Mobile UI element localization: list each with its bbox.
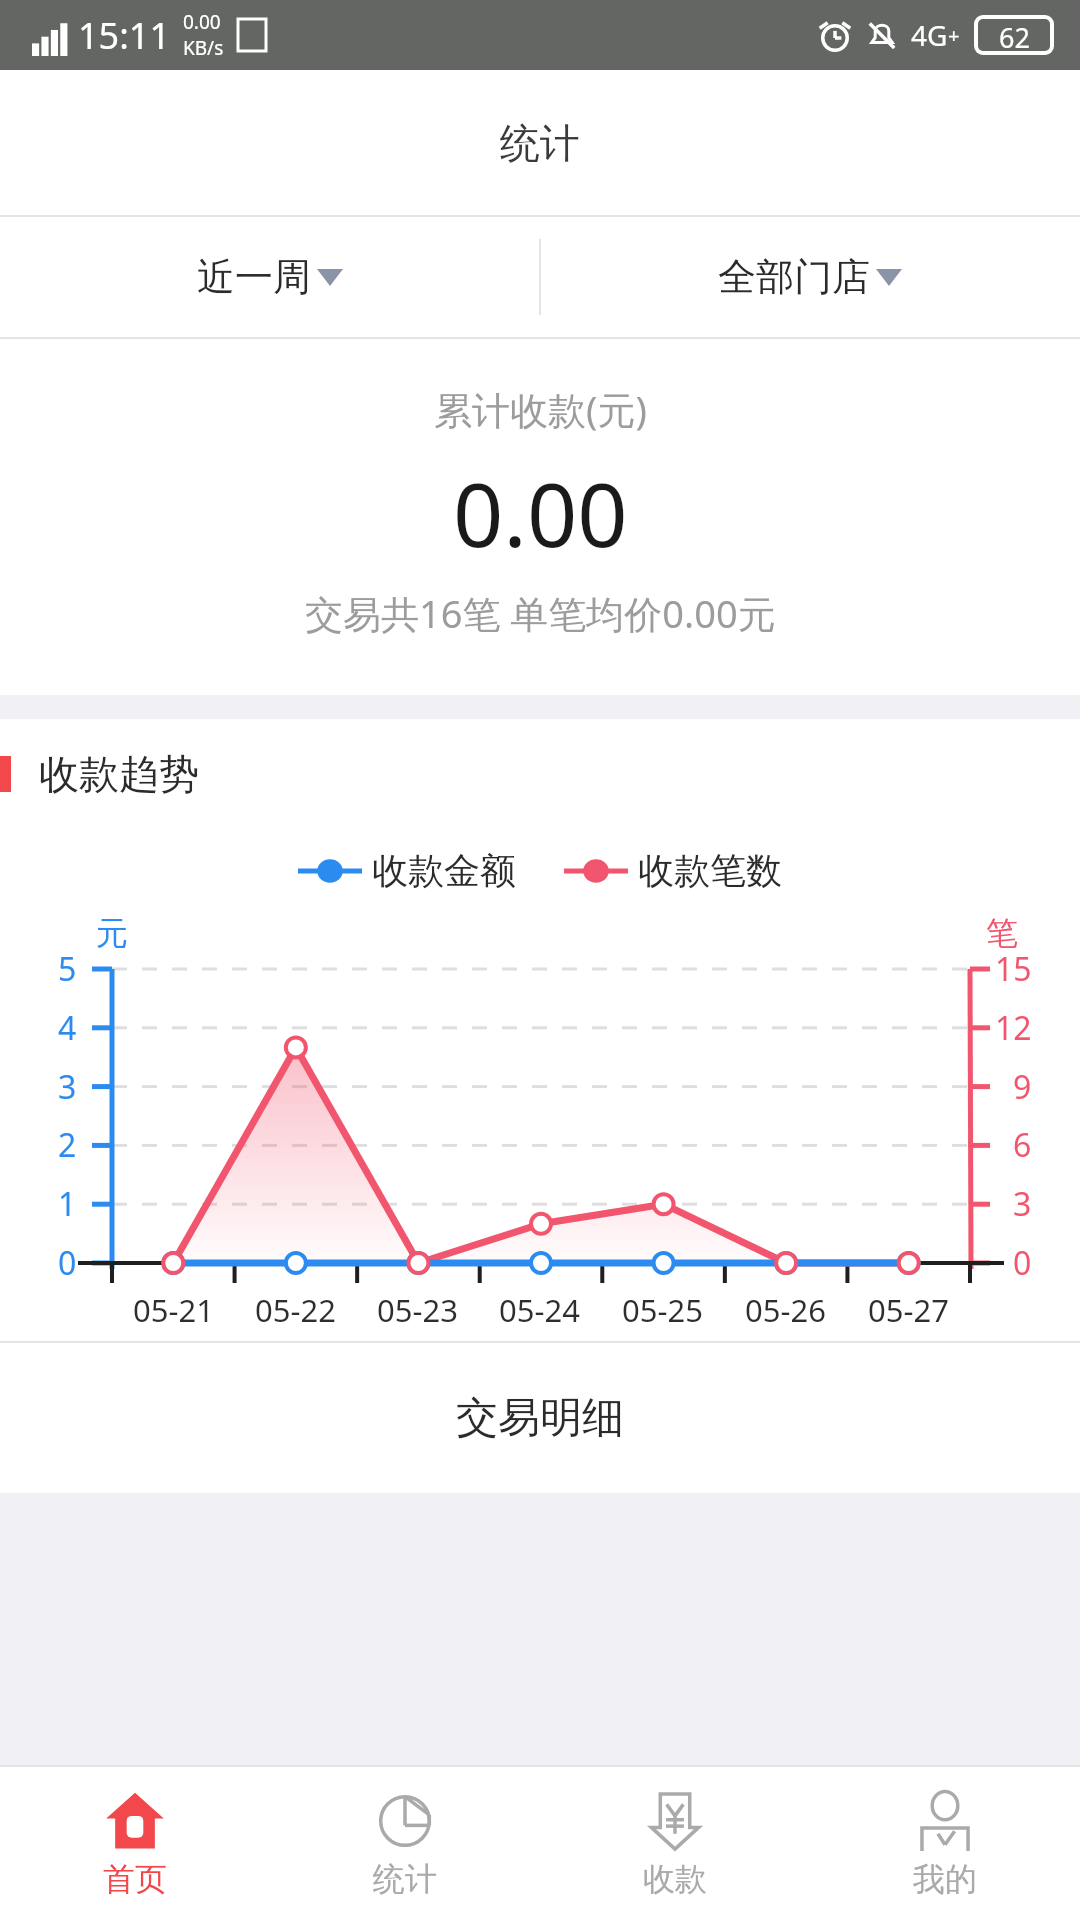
staticText: 首页 <box>103 1859 167 1899</box>
button[interactable]: 交易明细 <box>0 1343 1080 1493</box>
staticText: 5 <box>58 947 77 991</box>
staticText: 统计 <box>500 118 580 168</box>
button[interactable]: 首页 <box>0 1767 270 1920</box>
staticText: 12 <box>995 1006 1032 1050</box>
staticText: 近一周 <box>197 253 311 301</box>
staticText: 交易共16笔 单笔均价0.00元 <box>305 587 776 639</box>
staticText: 1 <box>58 1182 77 1226</box>
staticText: 收款金额 <box>372 848 516 893</box>
staticText: 收款趋势 <box>39 749 199 799</box>
staticText: 0 <box>58 1241 77 1285</box>
staticText: 4G <box>911 16 948 54</box>
staticText: 05-26 <box>745 1289 826 1331</box>
button[interactable]: 统计 <box>270 1767 540 1920</box>
staticText: 15 <box>995 947 1032 991</box>
staticText: 2 <box>58 1123 77 1167</box>
button[interactable]: 收款 <box>540 1767 810 1920</box>
staticText: 0 <box>1013 1241 1032 1285</box>
staticText: 笔 <box>986 913 1018 953</box>
staticText: 15:11 <box>78 11 171 60</box>
staticText: 05-24 <box>499 1289 580 1331</box>
staticText: 3 <box>58 1065 77 1109</box>
staticText: 05-22 <box>255 1289 336 1331</box>
staticText: 6 <box>1013 1123 1032 1167</box>
staticText: 62 <box>999 19 1030 51</box>
staticText: 统计 <box>373 1859 437 1899</box>
staticText: 我的 <box>913 1859 977 1899</box>
staticText: 9 <box>1013 1065 1032 1109</box>
staticText: 4 <box>58 1006 77 1050</box>
staticText: 05-23 <box>377 1289 458 1331</box>
button[interactable]: 我的 <box>810 1767 1080 1920</box>
staticText: 全部门店 <box>718 253 870 301</box>
button[interactable]: 近一周 <box>0 217 540 337</box>
staticText: KB/s <box>183 35 224 61</box>
button[interactable]: 全部门店 <box>540 217 1080 337</box>
staticText: 收款 <box>643 1859 707 1899</box>
staticText: 05-25 <box>622 1289 703 1331</box>
staticText: 收款笔数 <box>638 848 782 893</box>
staticText: 3 <box>1013 1182 1032 1226</box>
staticText: 05-27 <box>868 1289 949 1331</box>
staticText: 05-21 <box>133 1289 214 1331</box>
staticText: 0.00 <box>183 9 221 35</box>
staticText: 元 <box>96 913 128 953</box>
staticText: 交易明细 <box>456 1392 624 1445</box>
staticText: 0.00 <box>453 453 628 573</box>
staticText: + <box>948 22 960 49</box>
staticText: 累计收款(元) <box>434 383 647 435</box>
